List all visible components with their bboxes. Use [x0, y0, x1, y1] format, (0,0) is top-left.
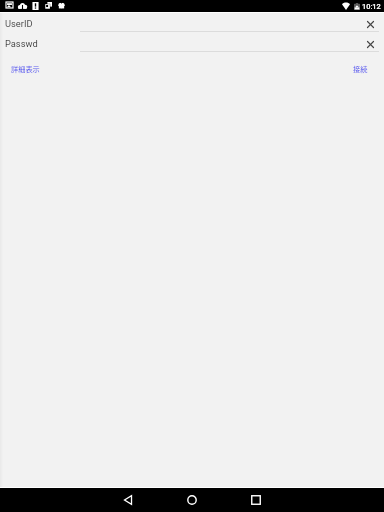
- staticText: Passwd: [5, 38, 38, 49]
- staticText: 詳細表示: [11, 64, 40, 74]
- button[interactable]: Recent apps: [236, 488, 276, 512]
- staticText: UserID: [5, 18, 33, 29]
- button[interactable]: 詳細表示: [5, 53, 46, 75]
- button[interactable]: Home: [172, 488, 212, 512]
- staticText: 10:12: [362, 2, 381, 11]
- button[interactable]: Back: [108, 488, 148, 512]
- button[interactable]: Clear: [363, 17, 377, 31]
- button[interactable]: 接続: [347, 53, 374, 75]
- button[interactable]: Clear: [363, 37, 377, 51]
- staticText: 接続: [353, 64, 368, 74]
